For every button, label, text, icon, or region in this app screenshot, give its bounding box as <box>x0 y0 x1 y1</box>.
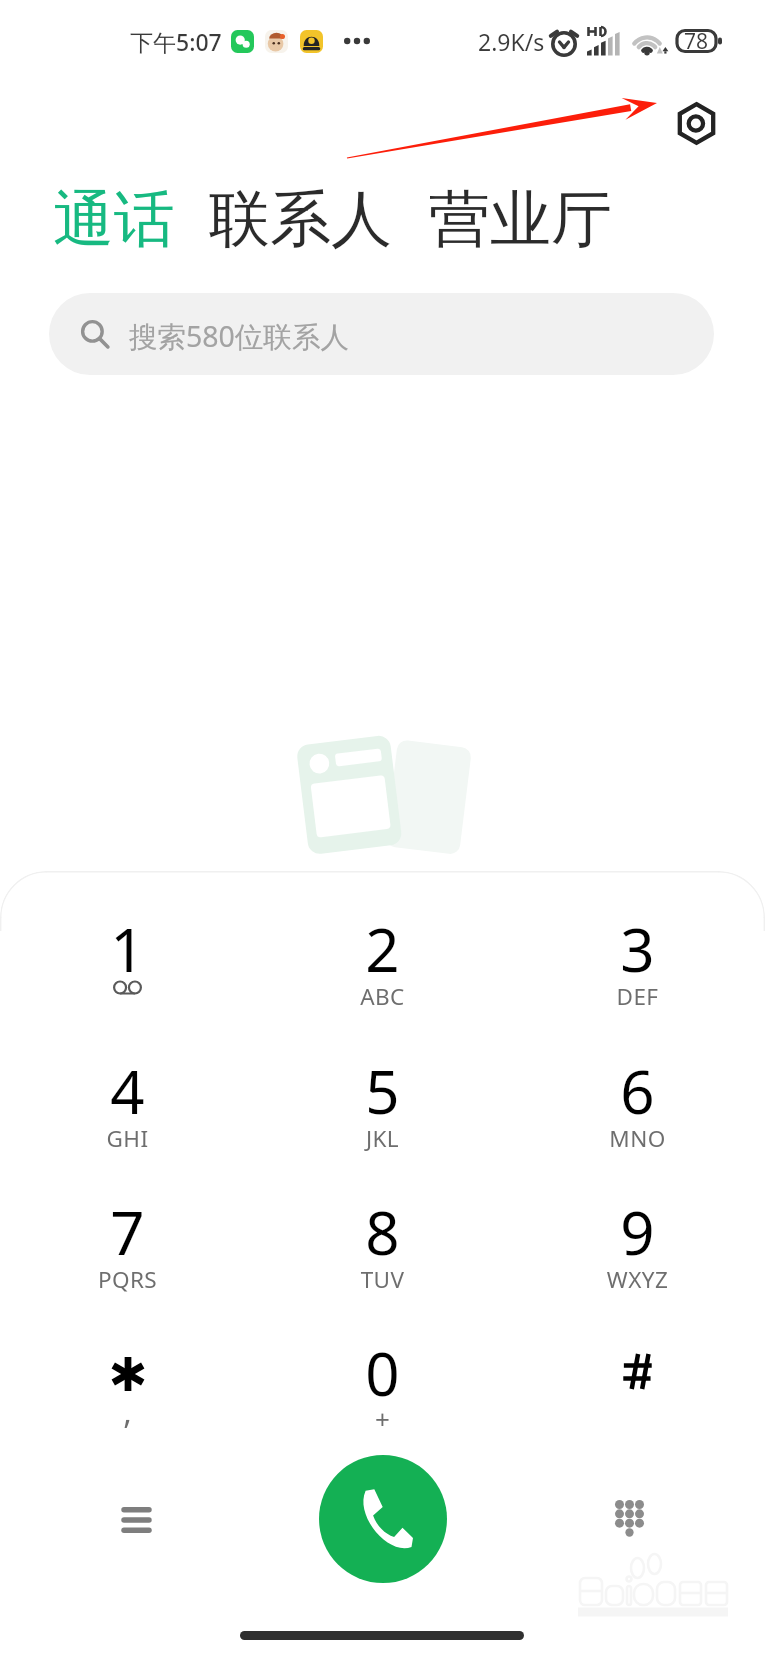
button[interactable]: 0 <box>255 1306 510 1446</box>
staticText: DEF <box>510 981 765 1012</box>
staticText: 78 <box>684 27 709 56</box>
button[interactable]: 通话 <box>53 181 175 258</box>
button[interactable]: Keypad <box>576 1465 682 1571</box>
staticText: 9 <box>510 1191 765 1273</box>
staticText: TUV <box>255 1264 510 1295</box>
staticText: JKL <box>255 1123 510 1154</box>
button[interactable]: 3 <box>510 882 765 1022</box>
button[interactable]: Call <box>319 1455 447 1583</box>
staticText: 通话 <box>53 181 175 258</box>
button[interactable]: 1 <box>0 882 255 1022</box>
button[interactable]: 搜索580位联系人 <box>49 293 714 375</box>
button[interactable]: , <box>0 1306 255 1446</box>
staticText: + <box>255 1401 510 1436</box>
button[interactable]: Settings <box>669 96 723 150</box>
staticText: 4 <box>0 1050 255 1132</box>
button[interactable]: 营业厅 <box>429 181 612 258</box>
staticText: 营业厅 <box>429 181 612 258</box>
button[interactable]: 9 <box>510 1165 765 1305</box>
staticText: 2 <box>255 908 510 990</box>
staticText: 联系人 <box>209 181 392 258</box>
staticText: 1 <box>0 908 255 990</box>
staticText: 7 <box>0 1191 255 1273</box>
button[interactable]: 6 <box>510 1024 765 1164</box>
button[interactable]: 8 <box>255 1165 510 1305</box>
button[interactable]: 7 <box>0 1165 255 1305</box>
button[interactable]: Call history <box>83 1467 189 1573</box>
staticText: 6 <box>510 1050 765 1132</box>
staticText: 下午5:07 <box>130 26 222 57</box>
button[interactable]: 2 <box>255 882 510 1022</box>
staticText: WXYZ <box>510 1264 765 1295</box>
button[interactable]: 5 <box>255 1024 510 1164</box>
staticText: 8 <box>255 1191 510 1273</box>
staticText: ABC <box>255 981 510 1012</box>
button[interactable] <box>510 1306 765 1446</box>
button[interactable]: 联系人 <box>209 181 392 258</box>
staticText: GHI <box>0 1123 255 1154</box>
staticText: , <box>0 1390 255 1434</box>
button[interactable]: 4 <box>0 1024 255 1164</box>
staticText: 3 <box>510 908 765 990</box>
staticText: 5 <box>255 1050 510 1132</box>
staticText: 2.9K/s <box>478 26 545 57</box>
staticText: MNO <box>510 1123 765 1154</box>
staticText: 0 <box>255 1332 510 1414</box>
staticText: PQRS <box>0 1264 255 1295</box>
staticText: 搜索580位联系人 <box>129 317 349 356</box>
